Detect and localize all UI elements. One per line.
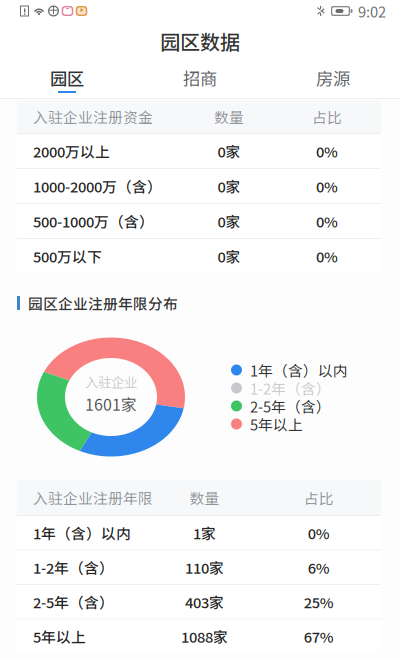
staticText: 0% bbox=[316, 175, 338, 197]
staticText: 0家 bbox=[217, 245, 240, 267]
staticText: 2-5年（含） bbox=[33, 591, 114, 612]
staticText: 25% bbox=[304, 591, 334, 612]
staticText: 1年（含）以内 bbox=[250, 359, 348, 381]
staticText: 1601家 bbox=[85, 392, 137, 415]
staticText: 9:02 bbox=[358, 0, 386, 22]
staticText: 5年以上 bbox=[33, 626, 86, 647]
staticText: 0家 bbox=[217, 140, 240, 162]
staticText: 0家 bbox=[217, 210, 240, 232]
staticText: 1年（含）以内 bbox=[33, 522, 131, 543]
staticText: 1家 bbox=[193, 522, 216, 543]
staticText: 入驻企业注册年限 bbox=[33, 487, 153, 508]
staticText: 500万以下 bbox=[33, 245, 102, 267]
staticText: 占比 bbox=[304, 487, 334, 508]
staticText: 500-1000万（含） bbox=[33, 210, 154, 232]
staticText: 0% bbox=[316, 140, 338, 162]
staticText: 入驻企业注册资金 bbox=[33, 106, 153, 127]
staticText: 房源 bbox=[316, 65, 350, 91]
staticText: 数量 bbox=[189, 487, 219, 508]
button[interactable]: 园区 bbox=[0, 60, 133, 98]
staticText: 0家 bbox=[217, 175, 240, 197]
staticText: 1088家 bbox=[181, 626, 228, 647]
staticText: 0% bbox=[316, 210, 338, 232]
staticText: 6% bbox=[308, 557, 330, 578]
staticText: 占比 bbox=[312, 106, 342, 127]
staticText: 403家 bbox=[185, 591, 224, 612]
staticText: 数量 bbox=[214, 106, 244, 127]
staticText: 2000万以上 bbox=[33, 140, 110, 162]
staticText: 园区数据 bbox=[160, 26, 240, 55]
staticText: 0% bbox=[308, 522, 330, 543]
staticText: 5年以上 bbox=[250, 413, 303, 435]
staticText: 1-2年（含） bbox=[250, 377, 331, 399]
staticText: 1-2年（含） bbox=[33, 557, 114, 578]
staticText: 入驻企业 bbox=[85, 372, 137, 391]
staticText: 67% bbox=[304, 626, 334, 647]
button[interactable]: 房源 bbox=[266, 60, 399, 98]
staticText: 1000-2000万（含） bbox=[33, 175, 162, 197]
staticText: 园区企业注册年限分布 bbox=[28, 292, 178, 314]
staticText: 园区 bbox=[50, 65, 84, 91]
staticText: 110家 bbox=[185, 557, 224, 578]
staticText: 2-5年（含） bbox=[250, 395, 331, 417]
staticText: 0% bbox=[316, 245, 338, 267]
button[interactable]: 招商 bbox=[133, 60, 266, 98]
staticText: 招商 bbox=[183, 65, 217, 91]
